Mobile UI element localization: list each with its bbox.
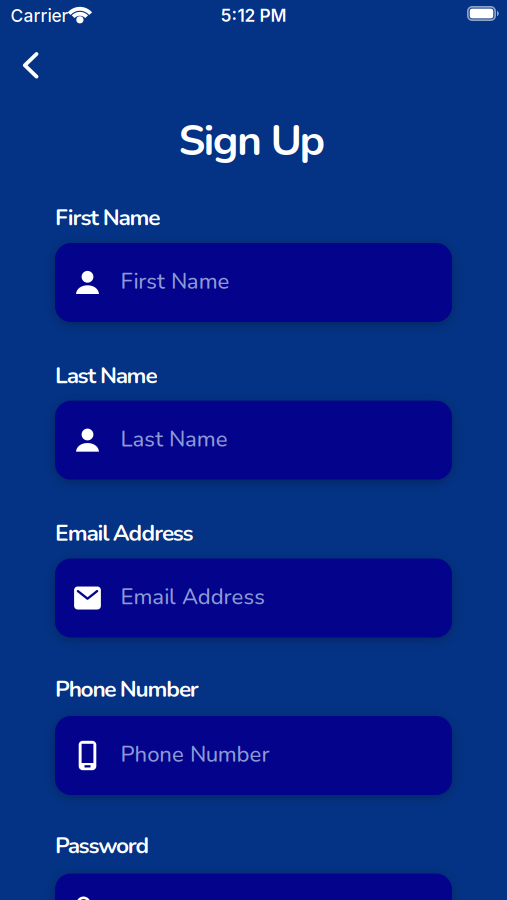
button[interactable]: Back — [15, 48, 46, 82]
button[interactable]: Email Address — [55, 558, 452, 637]
staticText: Sign Up — [178, 112, 326, 170]
staticText: Carrier — [10, 5, 68, 26]
staticText: Last Name — [120, 424, 228, 454]
staticText: Email Address — [120, 582, 265, 612]
staticText: Email Address — [55, 518, 194, 549]
staticText: Phone Number — [55, 674, 199, 705]
staticText: 5:12 PM — [220, 5, 286, 26]
staticText: Last Name — [55, 360, 157, 391]
staticText: Password — [55, 830, 150, 861]
button[interactable]: First Name — [55, 243, 452, 322]
button[interactable]: Phone Number — [55, 716, 452, 795]
staticText: First Name — [120, 266, 230, 296]
button[interactable]: Last Name — [55, 401, 452, 480]
staticText: First Name — [55, 202, 160, 233]
button[interactable]: Password — [55, 873, 452, 900]
staticText: Phone Number — [120, 739, 269, 769]
